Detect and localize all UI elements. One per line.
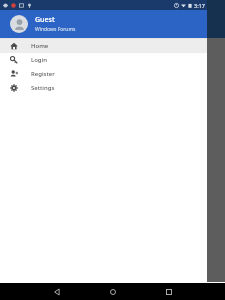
button[interactable]: Register bbox=[0, 67, 207, 81]
button[interactable]: Recent apps bbox=[152, 283, 186, 300]
button[interactable]: Guest bbox=[0, 10, 207, 38]
button[interactable]: Login bbox=[0, 53, 207, 67]
button[interactable]: Home bbox=[0, 39, 207, 53]
staticText: Register bbox=[31, 70, 55, 78]
staticText: Home bbox=[31, 42, 49, 50]
button[interactable]: Back bbox=[40, 283, 74, 300]
button[interactable]: Settings bbox=[0, 81, 207, 95]
staticText: 3:17 bbox=[194, 2, 205, 9]
staticText: Settings bbox=[31, 84, 55, 92]
button[interactable]: Create bbox=[199, 256, 221, 278]
staticText: Windows Forums bbox=[35, 26, 76, 33]
staticText: Guest bbox=[35, 15, 55, 25]
staticText: Login bbox=[31, 56, 47, 64]
button[interactable]: Home bbox=[96, 283, 130, 300]
